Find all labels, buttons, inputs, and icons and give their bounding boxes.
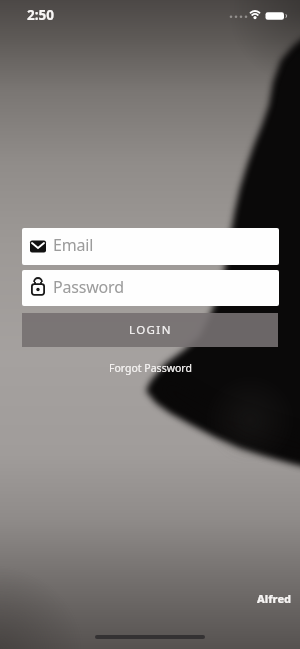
button[interactable]: LOGIN	[22, 313, 278, 347]
staticText: Forgot Password	[109, 361, 192, 375]
button[interactable]: Email	[22, 228, 279, 265]
staticText: 2:50	[27, 6, 54, 24]
staticText: Password	[53, 276, 124, 298]
button[interactable]: Password	[22, 270, 279, 306]
staticText: Alfred	[257, 591, 292, 606]
staticText: LOGIN	[129, 322, 172, 338]
button[interactable]: Forgot Password	[0, 358, 300, 378]
staticText: Email	[53, 234, 94, 256]
